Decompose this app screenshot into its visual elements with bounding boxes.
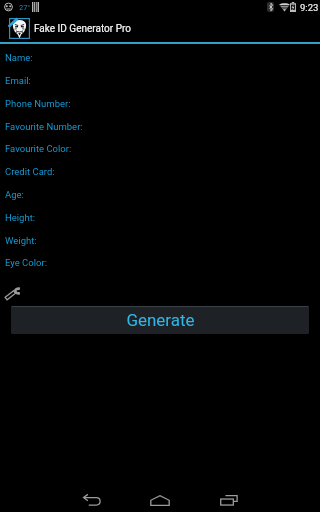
button[interactable]: Weight: [0,229,320,251]
button[interactable]: Recent apps [199,487,259,512]
staticText: 9:23 [300,2,319,13]
staticText: Credit Card: [5,166,55,177]
staticText: 27° [19,3,31,12]
staticText: Name: [5,52,33,63]
button[interactable]: Options [5,288,21,300]
button[interactable]: Favourite Number: [0,115,320,137]
staticText: Favourite Color: [5,143,72,154]
button[interactable]: Phone Number: [0,92,320,114]
button[interactable]: Email: [0,69,320,91]
staticText: Favourite Number: [5,121,83,132]
button[interactable]: Favourite Color: [0,137,320,159]
button[interactable]: Age: [0,183,320,205]
staticText: Weight: [5,235,37,246]
staticText: Generate [126,310,195,330]
button[interactable]: Generate [11,306,309,334]
staticText: Fake ID Generator Pro [34,23,131,35]
staticText: Phone Number: [5,98,71,109]
button[interactable]: Eye Color: [0,251,320,273]
staticText: Eye Color: [5,257,47,268]
staticText: Age: [5,189,24,200]
button[interactable]: Back [62,487,122,512]
staticText: Height: [5,212,36,223]
button[interactable]: Name: [0,46,320,68]
button[interactable]: Home [130,487,190,512]
staticText: Email: [5,75,31,86]
button[interactable]: Credit Card: [0,160,320,182]
button[interactable]: Height: [0,206,320,228]
